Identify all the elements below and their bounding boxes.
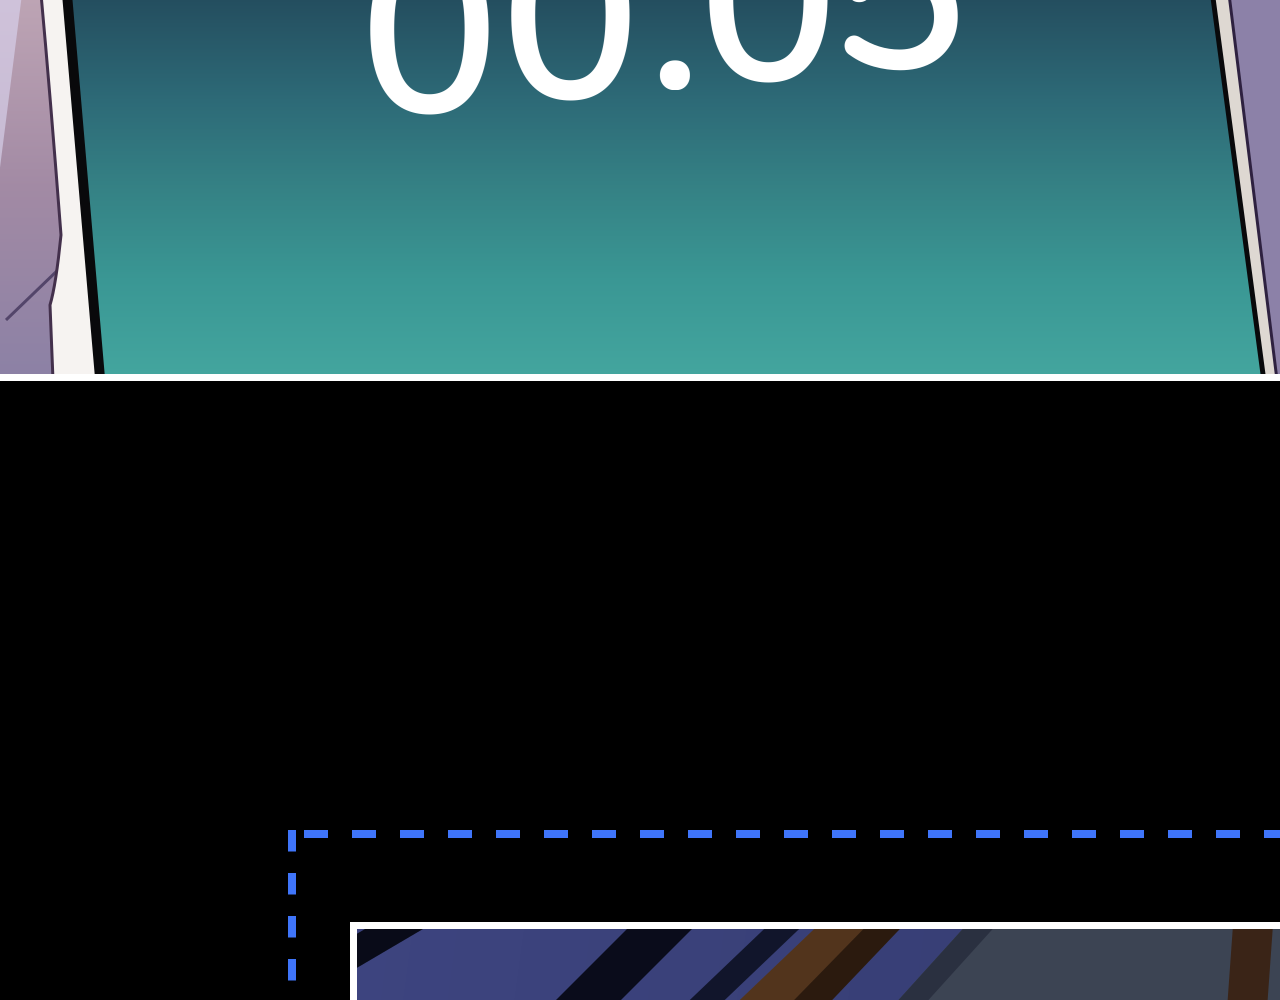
staticText: 5: [827, 0, 968, 151]
staticText: 0: [500, 0, 641, 181]
button[interactable]: Tutorial clip: [0, 0, 1280, 381]
staticText: 0: [359, 0, 500, 195]
button[interactable]: Clip thumbnail: [350, 922, 1280, 1000]
staticText: 0: [698, 0, 839, 163]
staticText: .: [647, 0, 703, 172]
